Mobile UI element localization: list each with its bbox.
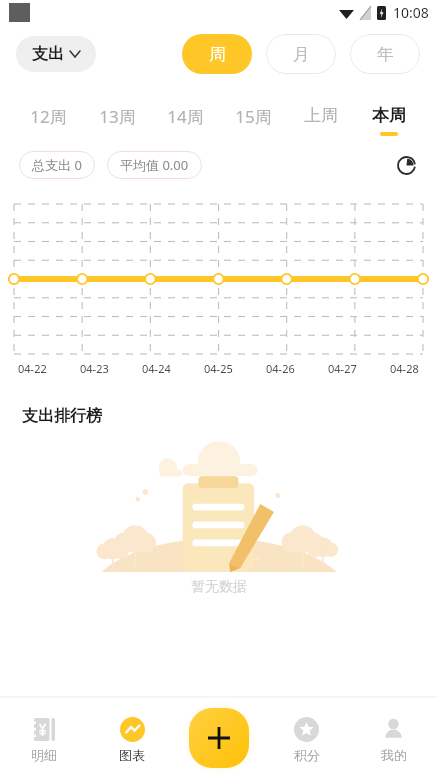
button[interactable]: 明细	[0, 703, 88, 777]
button[interactable]: 月	[266, 34, 336, 74]
staticText: 04-28	[390, 361, 419, 376]
button[interactable]: 图表	[88, 703, 176, 777]
button[interactable]: 周	[182, 34, 252, 74]
button[interactable]: 本周	[355, 105, 423, 136]
staticText: 图表	[119, 747, 145, 763]
staticText: 总支出 0	[32, 156, 82, 174]
staticText: 支出排行榜	[22, 406, 102, 426]
staticText: 10:08	[393, 3, 429, 22]
button[interactable]: 支出	[16, 36, 96, 72]
staticText: 月	[293, 44, 310, 65]
staticText: 04-25	[204, 361, 233, 376]
button[interactable]: 上周	[287, 105, 355, 132]
staticText: 04-22	[18, 361, 47, 376]
button[interactable]: 平均值 0.00	[107, 151, 202, 179]
staticText: 暂无数据	[191, 578, 247, 596]
staticText: 04-27	[328, 361, 357, 376]
button[interactable]: 年	[350, 34, 420, 74]
staticText: 周	[209, 44, 226, 65]
staticText: 04-24	[142, 361, 171, 376]
button[interactable]: 我的	[350, 703, 437, 777]
staticText: 本周	[372, 105, 406, 126]
button[interactable]: 饼图	[391, 150, 421, 180]
staticText: 13周	[99, 105, 136, 128]
button[interactable]: 积分	[263, 703, 350, 777]
staticText: 上周	[304, 105, 338, 126]
staticText: 04-23	[80, 361, 109, 376]
button[interactable]: 总支出 0	[19, 151, 95, 179]
staticText: 15周	[235, 105, 272, 128]
button[interactable]: 15周	[219, 105, 287, 134]
staticText: 明细	[31, 747, 57, 763]
button[interactable]: 12周	[14, 105, 83, 134]
staticText: 积分	[294, 747, 320, 763]
staticText: 我的	[381, 747, 407, 763]
staticText: 14周	[167, 105, 204, 128]
button[interactable]: 14周	[151, 105, 219, 134]
button[interactable]: 13周	[83, 105, 151, 134]
staticText: 年	[377, 44, 394, 65]
button[interactable]: 添加	[189, 708, 249, 768]
staticText: 平均值 0.00	[120, 156, 189, 174]
staticText: 04-26	[266, 361, 295, 376]
staticText: 12周	[30, 105, 67, 128]
staticText: 支出	[32, 44, 64, 64]
